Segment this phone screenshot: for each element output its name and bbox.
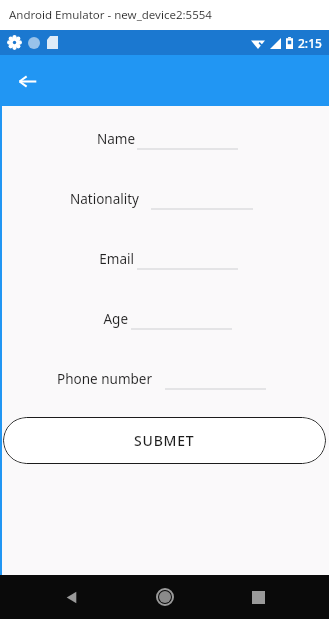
staticText: Android Emulator - new_device2:5554 <box>9 7 212 23</box>
staticText: SUBMET <box>134 431 195 450</box>
staticText: Age <box>103 310 128 328</box>
button[interactable]: Back <box>10 64 44 98</box>
staticText: Nationality <box>70 190 139 208</box>
staticText: Phone number <box>57 370 152 388</box>
staticText: Name <box>96 130 135 148</box>
staticText: Email <box>99 250 134 268</box>
button[interactable]: Recents <box>239 578 277 616</box>
staticText: 2:15 <box>298 35 322 51</box>
button[interactable]: Back <box>52 578 90 616</box>
button[interactable]: Home <box>146 578 184 616</box>
button[interactable]: SUBMET <box>3 417 326 464</box>
